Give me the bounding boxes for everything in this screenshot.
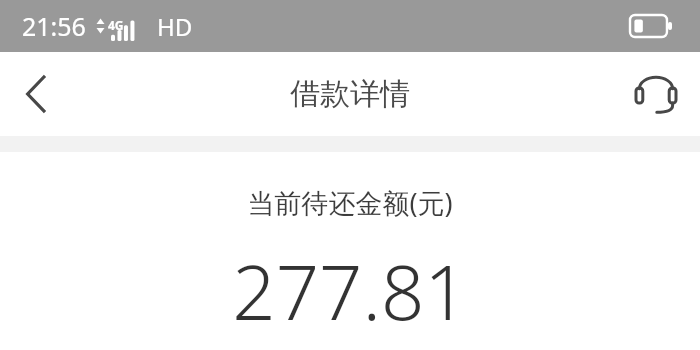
button[interactable]: Customer service	[628, 66, 684, 122]
staticText: 277.81	[232, 239, 468, 343]
staticText: 21:56	[22, 9, 86, 43]
staticText: 当前待还金额(元)	[247, 184, 453, 221]
staticText: 借款详情	[290, 75, 410, 113]
staticText: 4G	[108, 17, 124, 33]
button[interactable]: Back	[8, 66, 64, 122]
staticText: HD	[157, 10, 193, 43]
